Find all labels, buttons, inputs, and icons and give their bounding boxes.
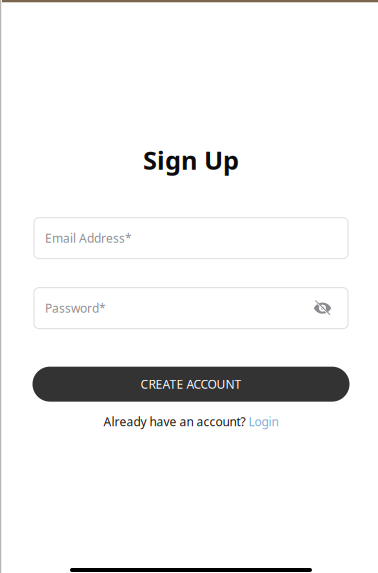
staticText: Login (248, 414, 278, 429)
staticText: Already have an account? (103, 414, 245, 429)
staticText: Email Address* (45, 230, 132, 246)
staticText: CREATE ACCOUNT (140, 376, 241, 392)
staticText: Sign Up (143, 143, 239, 177)
staticText: Password* (45, 300, 106, 316)
button[interactable]: Login (248, 414, 278, 429)
button[interactable]: CREATE ACCOUNT (32, 367, 349, 402)
